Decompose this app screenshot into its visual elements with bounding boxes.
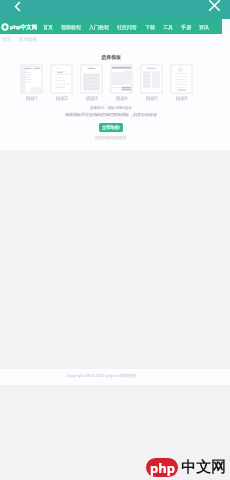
staticText: Copyright 2014-2021 php.cn 版权所有: [66, 373, 136, 378]
button[interactable]: [51, 65, 72, 93]
staticText: 模板1: [26, 95, 38, 101]
button[interactable]: Back: [6, 0, 28, 16]
staticText: 模板5: [146, 95, 158, 101]
button[interactable]: php中文网 首页: [1, 23, 38, 31]
button[interactable]: Close: [203, 0, 225, 15]
staticText: 模板2: [56, 95, 68, 101]
button[interactable]: 资讯: [195, 24, 213, 30]
staticText: 社区问答: [117, 24, 137, 30]
staticText: 工具: [163, 24, 173, 30]
staticText: 中文网: [181, 458, 226, 477]
staticText: 模板4: [116, 95, 128, 101]
staticText: php: [150, 459, 175, 477]
button[interactable]: 视频教程: [57, 24, 85, 30]
staticText: 模板3: [86, 95, 98, 101]
staticText: 温馨提示：模板可随时更换: [0, 106, 226, 110]
button[interactable]: [141, 65, 162, 93]
staticText: 手册: [181, 24, 191, 30]
button[interactable]: [21, 65, 42, 93]
button[interactable]: 工具: [159, 24, 177, 30]
staticText: 入门教程: [89, 24, 109, 30]
button[interactable]: 手册: [177, 24, 195, 30]
staticText: 资讯: [199, 24, 209, 30]
button[interactable]: 入门教程: [85, 24, 113, 30]
staticText: 模板6: [176, 95, 188, 101]
button[interactable]: 首页: [39, 24, 57, 30]
button[interactable]: 立即制作: [99, 123, 123, 132]
staticText: 首页: [43, 24, 53, 30]
staticText: 选择模板: [0, 54, 226, 60]
staticText: 更多模板敬请期待: [0, 135, 226, 140]
button[interactable]: 社区问答: [113, 24, 141, 30]
staticText: 下载: [145, 24, 155, 30]
staticText: php中文网: [10, 23, 38, 31]
staticText: 立即制作: [102, 125, 120, 131]
button[interactable]: [111, 65, 132, 93]
staticText: 视频教程: [61, 24, 81, 30]
button[interactable]: [171, 65, 192, 93]
button[interactable]: [81, 65, 102, 93]
staticText: 选择模板后可在编辑栏随时更换模板，内容自动保存: [0, 112, 226, 117]
button[interactable]: 下载: [141, 24, 159, 30]
staticText: 首页: [2, 37, 11, 43]
staticText: 简历模板: [19, 37, 37, 43]
